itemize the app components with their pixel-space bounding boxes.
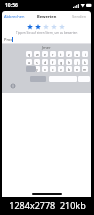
button[interactable]: Umschalt [26,66,36,72]
staticText: j [77,60,78,65]
button[interactable]: h [66,59,72,65]
button[interactable]: j [74,59,80,65]
button[interactable]: Abbrechen [4,14,25,19]
button[interactable]: n [74,66,80,72]
staticText: v [60,67,62,72]
staticText: t [60,52,62,57]
staticText: i [85,52,86,57]
button[interactable]: c [50,66,56,72]
button[interactable]: x [42,66,48,72]
staticText: u [76,52,79,57]
staticText: Bewerten [37,14,57,19]
staticText: f [52,60,54,65]
button[interactable]: k [82,59,88,65]
staticText: e [44,52,46,57]
button[interactable]: Stern 1 [26,23,34,30]
button[interactable]: y [34,66,40,72]
button[interactable]: e [42,51,48,57]
button[interactable]: Sprache wechseln [10,83,16,89]
staticText: m [83,67,87,72]
button[interactable]: d [42,59,48,65]
button[interactable]: Stern 3 [42,23,50,30]
staticText: d [44,60,47,65]
button[interactable]: g [58,59,64,65]
button[interactable]: r [50,51,56,57]
staticText: Prod [4,37,13,42]
button[interactable]: Zeile [78,76,90,82]
staticText: 10:56 [5,2,18,9]
staticText: Jmer [42,45,51,50]
staticText: b [68,67,71,72]
button[interactable]: v [58,66,64,72]
button[interactable]: q [26,51,32,57]
staticText: y [36,67,38,72]
staticText: Tippen Sie auf einen Stern, um zu bewert… [16,31,78,35]
staticText: k [84,60,86,65]
button[interactable]: i [82,51,88,57]
staticText: w [36,52,39,57]
staticText: s [36,60,38,65]
button[interactable]: z [66,51,72,57]
button[interactable]: Stern 5 [58,23,66,30]
staticText: h [68,60,71,65]
button[interactable]: w [34,51,40,57]
button[interactable]: u [74,51,80,57]
staticText: r [52,52,54,57]
button[interactable]: Senden [72,14,87,19]
staticText: g [60,60,63,65]
staticText: n [76,67,79,72]
button[interactable]: Prod [2,36,91,43]
button[interactable]: a [26,59,32,65]
staticText: 1284x2778 210kb [9,199,86,211]
button[interactable]: f [50,59,56,65]
staticText: Senden [72,14,87,19]
staticText: z [68,52,70,57]
button[interactable]: t [58,51,64,57]
button[interactable]: b [66,66,72,72]
staticText: Abbrechen [4,14,25,19]
staticText: x [44,67,46,72]
staticText: a [28,60,30,65]
staticText: q [28,52,31,57]
button[interactable]: m [82,66,88,72]
button[interactable]: Stern 2 [34,23,42,30]
staticText: c [52,67,54,72]
button[interactable]: Stern 4 [50,23,58,30]
button[interactable]: s [34,59,40,65]
